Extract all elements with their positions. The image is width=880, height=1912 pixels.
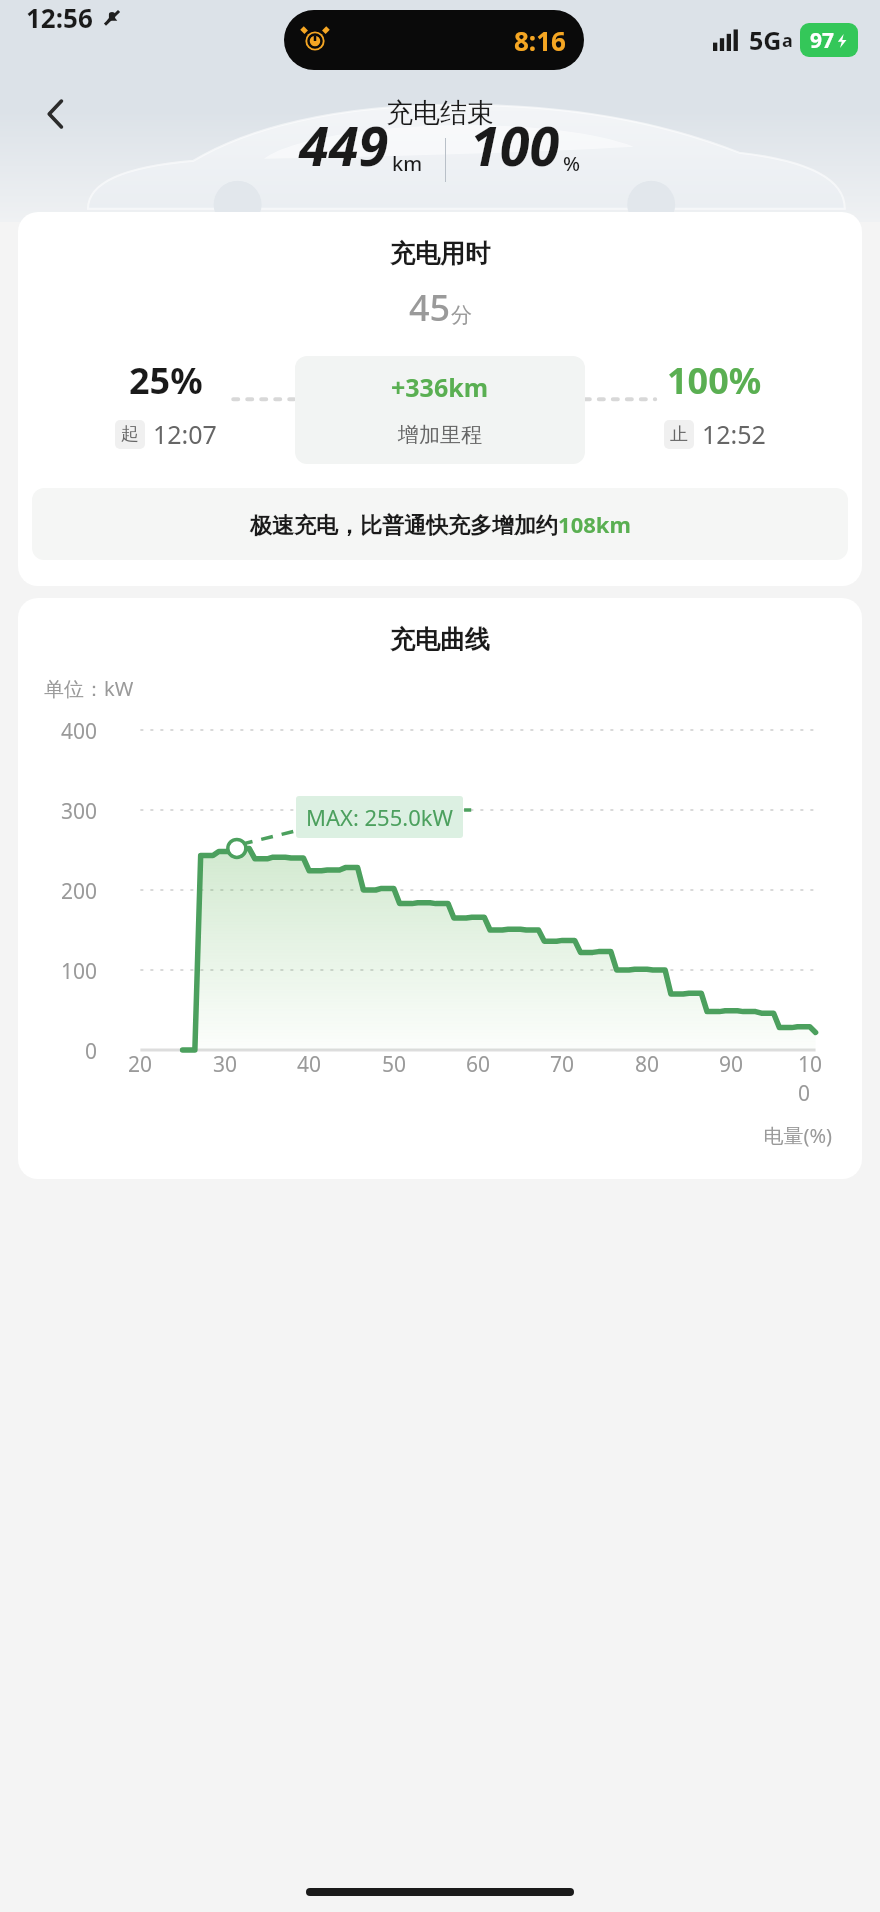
staticText: 12:52 xyxy=(702,417,766,451)
staticText: 25% xyxy=(129,356,203,405)
staticText: 80 xyxy=(635,1050,660,1079)
staticText: 充电用时 xyxy=(18,238,862,269)
staticText: 12:07 xyxy=(153,417,217,451)
staticText: 12:56 xyxy=(26,0,93,35)
staticText: 50 xyxy=(382,1050,407,1079)
staticText: 70 xyxy=(550,1050,575,1079)
staticText: 分 xyxy=(451,302,472,328)
staticText: 电量(%) xyxy=(18,1122,832,1149)
staticText: km xyxy=(392,150,423,177)
staticText: 449 xyxy=(299,108,389,182)
staticText: 200 xyxy=(61,877,98,906)
staticText: 45 xyxy=(409,283,451,332)
staticText: 增加里程 xyxy=(398,422,482,448)
staticText: 极速充电，比普通快充多增加约108km xyxy=(250,509,631,539)
staticText: 30 xyxy=(213,1050,238,1079)
staticText: 97 xyxy=(810,26,835,55)
staticText: 8:16 xyxy=(514,23,566,58)
staticText: 单位：kW xyxy=(44,675,134,702)
staticText: +336km xyxy=(391,370,489,404)
staticText: 起 xyxy=(121,423,139,446)
staticText: 100 xyxy=(470,108,560,182)
staticText: a xyxy=(782,28,793,53)
staticText: 5G xyxy=(749,23,782,57)
button[interactable]: 充电曲线 xyxy=(18,598,862,1179)
staticText: 100% xyxy=(667,356,762,405)
staticText: 充电结束 xyxy=(0,96,880,130)
staticText: 0 xyxy=(85,1037,98,1066)
staticText: 60 xyxy=(466,1050,491,1079)
staticText: MAX: 255.0kW xyxy=(306,802,453,832)
staticText: 40 xyxy=(297,1050,322,1079)
button[interactable]: 充电用时 xyxy=(18,212,862,586)
staticText: 100 xyxy=(61,957,98,986)
staticText: % xyxy=(563,150,581,177)
staticText: 充电曲线 xyxy=(18,624,862,655)
staticText: 20 xyxy=(128,1050,153,1079)
staticText: 止 xyxy=(670,423,688,446)
button[interactable]: Back xyxy=(30,88,82,140)
staticText: 300 xyxy=(61,797,98,826)
staticText: 100 xyxy=(798,1050,834,1108)
staticText: 90 xyxy=(719,1050,744,1079)
staticText: 400 xyxy=(61,717,98,746)
